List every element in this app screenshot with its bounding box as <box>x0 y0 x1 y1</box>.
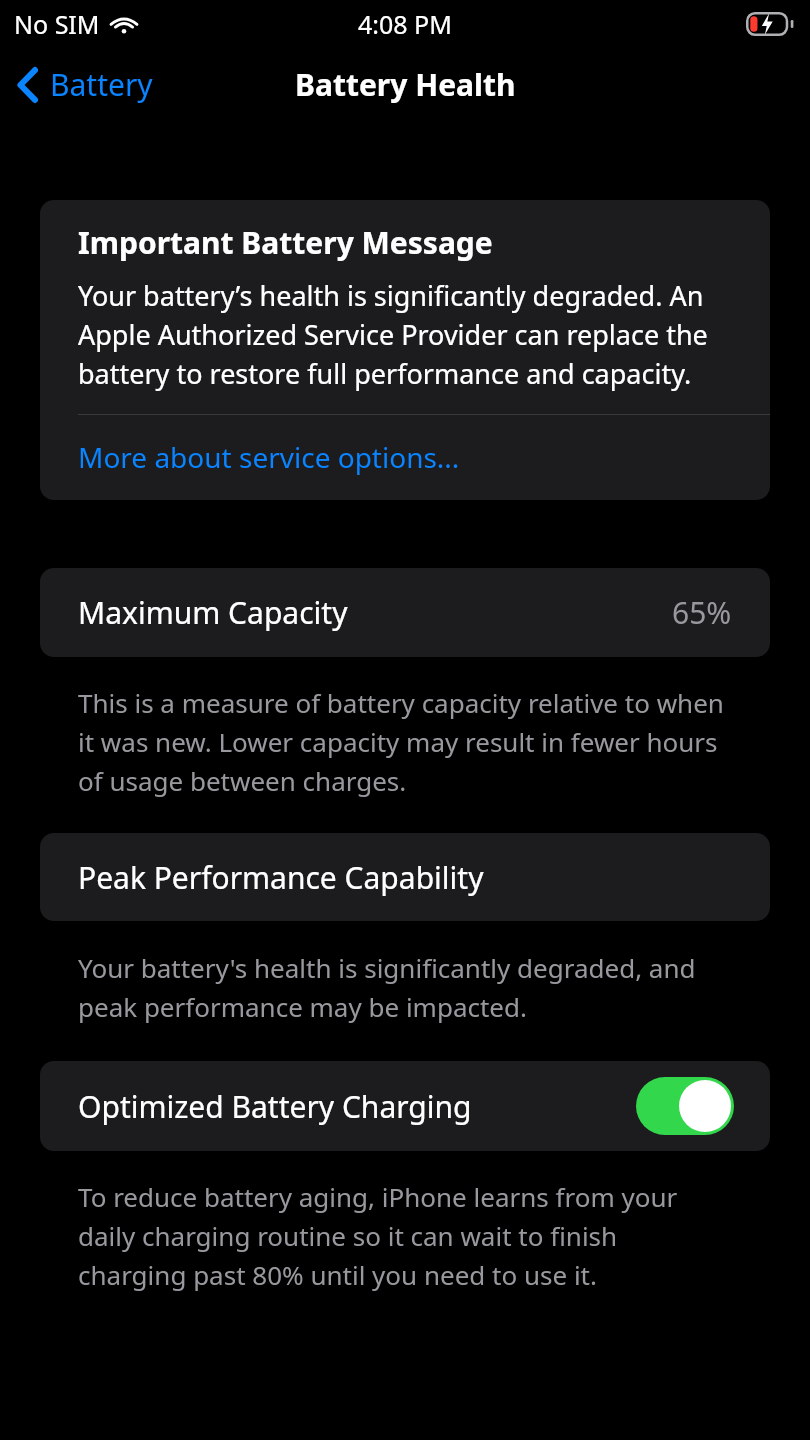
staticText: Peak Performance Capability <box>78 857 484 898</box>
staticText: Optimized Battery Charging <box>78 1086 472 1127</box>
staticText: 4:08 PM <box>358 7 452 41</box>
staticText: Maximum Capacity <box>78 592 348 633</box>
staticText: More about service options... <box>78 438 460 476</box>
staticText: No SIM <box>14 7 100 41</box>
staticText: Your battery’s health is significantly d… <box>78 277 740 392</box>
staticText: Your battery's health is significantly d… <box>78 950 732 1024</box>
button[interactable]: More about service options... <box>40 415 770 500</box>
staticText: To reduce battery aging, iPhone learns f… <box>78 1179 732 1292</box>
staticText: This is a measure of battery capacity re… <box>78 685 732 798</box>
staticText: Battery <box>50 64 153 105</box>
staticText: 65% <box>672 592 732 633</box>
button[interactable]: Optimized Battery Charging <box>40 1061 770 1151</box>
button[interactable]: Battery <box>0 58 169 111</box>
staticText: Battery Health <box>295 64 516 105</box>
button[interactable]: Maximum Capacity <box>40 568 770 657</box>
button[interactable]: Peak Performance Capability <box>40 833 770 921</box>
button[interactable]: Optimized Battery Charging toggle, on <box>636 1077 734 1135</box>
staticText: Important Battery Message <box>78 222 493 263</box>
